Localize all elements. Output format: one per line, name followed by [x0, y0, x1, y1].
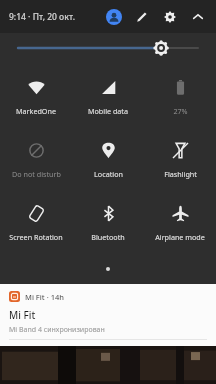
staticText: Do not disturb — [12, 169, 61, 179]
staticText: 27% — [173, 106, 188, 116]
button[interactable]: Settings — [158, 5, 181, 28]
staticText: Location — [94, 169, 123, 179]
button[interactable]: Screen Rotation — [0, 198, 72, 245]
button[interactable]: 27% — [144, 72, 216, 119]
button[interactable]: Flashlight — [144, 135, 216, 182]
staticText: Flashlight — [164, 169, 197, 179]
staticText: Mi Fit — [9, 308, 36, 322]
staticText: Airplane mode — [155, 232, 205, 242]
button[interactable]: Edit tiles — [130, 5, 153, 28]
staticText: 9:14 · Пт, 20 окт. — [9, 11, 75, 23]
button[interactable]: Bluetooth — [72, 198, 144, 245]
button[interactable]: Mobile data — [72, 72, 144, 119]
button[interactable]: Collapse — [186, 5, 209, 28]
button[interactable]: Location — [72, 135, 144, 182]
button[interactable]: Brightness slider — [0, 33, 216, 63]
button[interactable]: User account — [102, 5, 125, 28]
staticText: MarkedOne — [16, 106, 56, 116]
button[interactable]: Mi Fit · 14h — [0, 284, 216, 346]
staticText: Mi Band 4 синхронизирован — [9, 325, 105, 335]
staticText: Mi Fit · 14h — [25, 292, 64, 302]
button[interactable]: Do not disturb — [0, 135, 72, 182]
button[interactable]: MarkedOne — [0, 72, 72, 119]
staticText: Screen Rotation — [9, 232, 63, 242]
button[interactable]: Airplane mode — [144, 198, 216, 245]
staticText: Bluetooth — [91, 232, 125, 242]
staticText: Mobile data — [88, 106, 128, 116]
